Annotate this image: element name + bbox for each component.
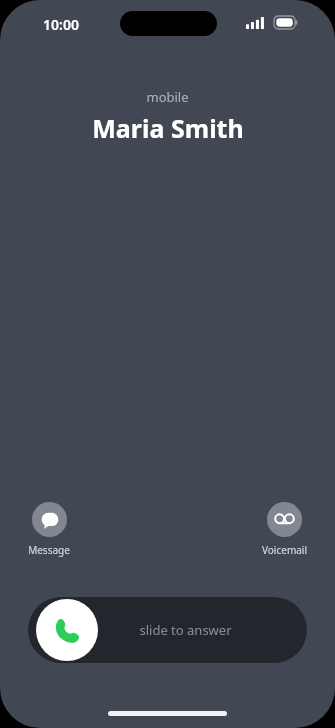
button[interactable]: Answer call — [36, 599, 98, 661]
staticText: slide to answer — [139, 621, 232, 639]
button[interactable]: Voicemail — [262, 502, 307, 557]
staticText: mobile — [146, 88, 189, 106]
staticText: Message — [28, 543, 70, 557]
button[interactable]: slide to answer — [28, 597, 307, 663]
button[interactable]: Message — [28, 502, 70, 557]
staticText: 10:00 — [43, 15, 79, 34]
staticText: Maria Smith — [92, 111, 244, 145]
staticText: Voicemail — [262, 543, 307, 557]
